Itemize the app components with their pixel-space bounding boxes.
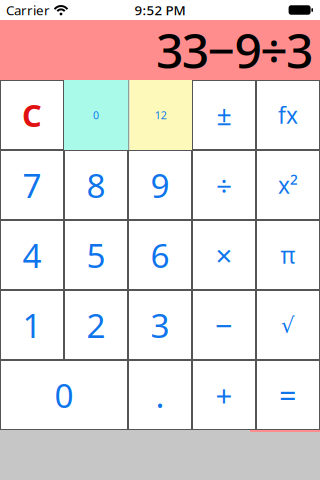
staticText: 2	[86, 303, 105, 347]
staticText: x²	[278, 170, 298, 200]
button[interactable]: 2	[64, 290, 128, 360]
button[interactable]: π	[256, 220, 320, 290]
button[interactable]: =	[256, 360, 320, 430]
staticText: 5	[86, 233, 105, 277]
button[interactable]: ±	[192, 80, 256, 150]
button[interactable]: ×	[192, 220, 256, 290]
staticText: fx	[278, 100, 298, 130]
staticText: π	[280, 240, 295, 270]
staticText: ±	[216, 97, 231, 133]
button[interactable]: −	[192, 290, 256, 360]
staticText: .	[155, 373, 164, 417]
button[interactable]: 7	[0, 150, 64, 220]
staticText: 0	[93, 108, 99, 122]
button[interactable]: x²	[256, 150, 320, 220]
button[interactable]: 6	[128, 220, 192, 290]
button[interactable]: √	[256, 290, 320, 360]
staticText: +	[215, 375, 232, 414]
staticText: 9:52 PM	[134, 1, 185, 19]
button[interactable]: 5	[64, 220, 128, 290]
staticText: 7	[22, 163, 41, 207]
staticText: −	[215, 305, 233, 345]
button[interactable]: 9	[128, 150, 192, 220]
button[interactable]: +	[192, 360, 256, 430]
staticText: 0	[54, 373, 73, 417]
button[interactable]: 8	[64, 150, 128, 220]
staticText: √	[281, 313, 295, 337]
button[interactable]: 0	[0, 360, 128, 430]
button[interactable]: 4	[0, 220, 64, 290]
staticText: 8	[86, 163, 105, 207]
staticText: 9	[150, 163, 169, 207]
staticText: ×	[215, 235, 232, 274]
button[interactable]: .	[128, 360, 192, 430]
button[interactable]: fx	[256, 80, 320, 150]
staticText: 12	[155, 108, 167, 122]
staticText: 33−9÷3	[156, 18, 313, 82]
staticText: Carrier	[6, 1, 50, 19]
button[interactable]: 3	[128, 290, 192, 360]
staticText: 6	[150, 233, 169, 277]
staticText: C	[22, 95, 42, 135]
staticText: 4	[22, 233, 41, 277]
staticText: 3	[150, 303, 169, 347]
button[interactable]: C	[0, 80, 64, 150]
staticText: =	[279, 375, 297, 415]
staticText: 1	[22, 303, 41, 347]
button[interactable]: ÷	[192, 150, 256, 220]
button[interactable]: 1	[0, 290, 64, 360]
staticText: ÷	[216, 166, 232, 204]
